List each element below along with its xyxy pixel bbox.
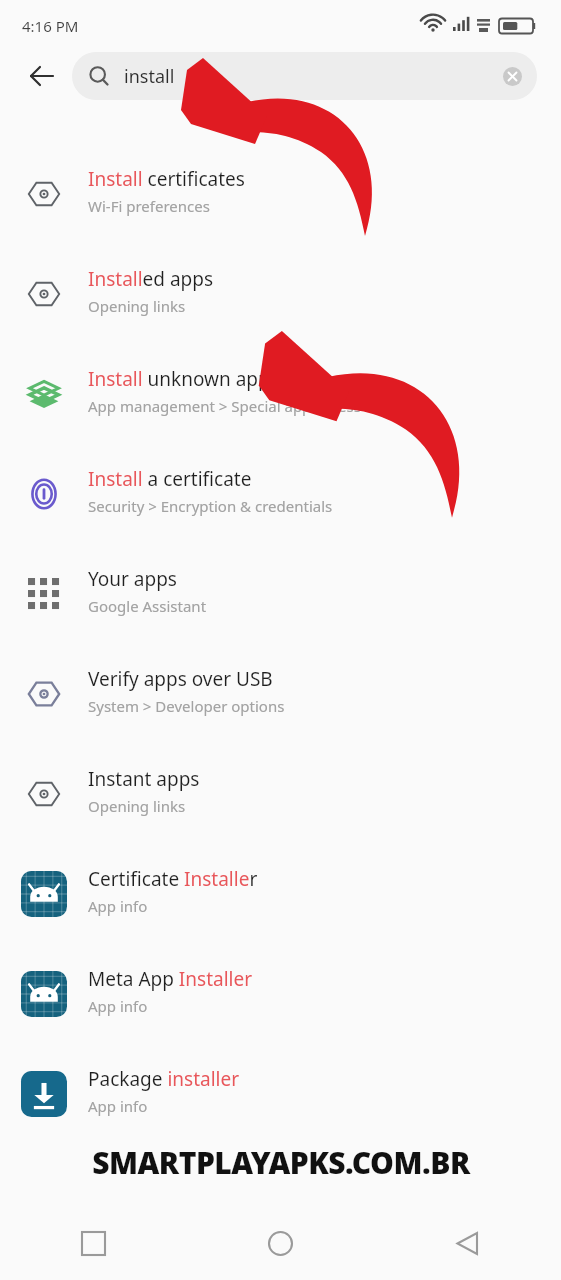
button[interactable]: Install certificates [0,152,561,248]
staticText: Wi-Fi preferences [88,196,210,216]
button[interactable]: install [72,52,537,100]
button[interactable]: Clear [495,59,529,93]
staticText: Verify apps over USB [88,666,273,692]
staticText: App management > Special app access [88,396,361,416]
button[interactable]: Instant apps [0,752,561,848]
staticText: App info [88,896,148,916]
button[interactable]: Certificate Installer [0,852,561,948]
staticText: Certificate Installer [88,866,258,892]
button[interactable]: Back [18,52,66,100]
staticText: System > Developer options [88,696,285,716]
staticText: App info [88,1096,148,1116]
staticText: Your apps [88,566,177,592]
staticText: Meta App Installer [88,966,253,992]
staticText: Install unknown apps [88,366,279,392]
staticText: SMARTPLAYAPKS.COM.BR [92,1142,470,1183]
staticText: Opening links [88,796,186,816]
button[interactable]: Recents [0,1206,187,1280]
staticText: Install certificates [88,166,245,192]
staticText: Package installer [88,1066,240,1092]
staticText: Opening links [88,296,186,316]
staticText: Instant apps [88,766,200,792]
button[interactable]: Back [374,1206,561,1280]
staticText: App info [88,996,148,1016]
button[interactable]: Install unknown apps [0,352,561,448]
staticText: Install a certificate [88,466,252,492]
button[interactable]: Package installer [0,1052,561,1148]
staticText: Google Assistant [88,596,207,616]
staticText: Installed apps [88,266,214,292]
button[interactable]: Install a certificate [0,452,561,548]
button[interactable]: Home [187,1206,374,1280]
staticText: 4:16 PM [22,16,79,36]
button[interactable]: Meta App Installer [0,952,561,1048]
button[interactable]: Your apps [0,552,561,648]
staticText: install [124,64,175,89]
button[interactable]: Verify apps over USB [0,652,561,748]
button[interactable]: Installed apps [0,252,561,348]
staticText: Security > Encryption & credentials [88,496,333,516]
